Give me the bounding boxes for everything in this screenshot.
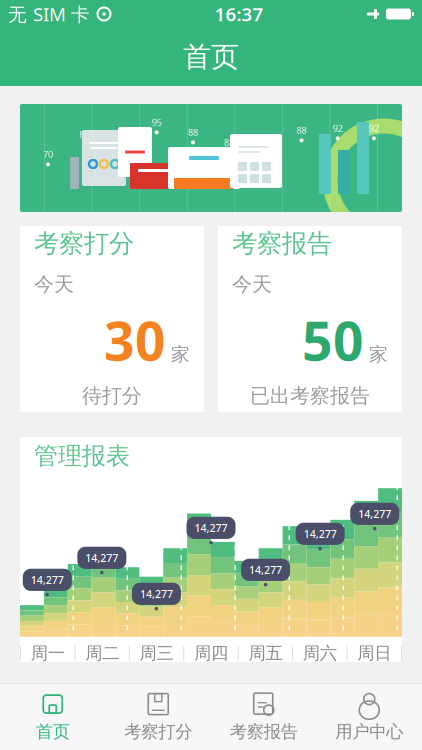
staticText: 95: [152, 116, 162, 128]
staticText: 85: [260, 136, 270, 148]
staticText: 考察打分: [34, 228, 134, 259]
staticText: 待打分: [82, 383, 142, 408]
staticText: 管理报表: [34, 441, 130, 471]
staticText: 14,277: [304, 527, 337, 541]
staticText: 周六: [303, 643, 337, 664]
staticText: 14,277: [140, 587, 173, 601]
staticText: 考察报告: [232, 228, 332, 259]
staticText: 家: [171, 343, 190, 366]
staticText: 88: [188, 126, 198, 138]
button[interactable]: 首页: [0, 684, 105, 750]
staticText: 50: [302, 305, 364, 375]
button[interactable]: 用户中心: [316, 684, 422, 750]
staticText: 周五: [248, 643, 282, 664]
staticText: 家: [369, 343, 388, 366]
staticText: 14,277: [249, 563, 282, 577]
staticText: 无 SIM 卡: [8, 2, 90, 26]
staticText: 周日: [357, 643, 391, 664]
staticText: 14,277: [358, 507, 391, 521]
staticText: 周四: [194, 643, 228, 664]
staticText: 14,277: [85, 551, 118, 565]
staticText: 85: [224, 136, 234, 148]
staticText: 92: [333, 122, 343, 134]
staticText: 用户中心: [335, 721, 403, 742]
staticText: 考察打分: [124, 721, 192, 742]
staticText: 30: [104, 305, 166, 375]
staticText: 今天: [34, 272, 74, 297]
button[interactable]: 考察打分: [20, 226, 204, 412]
staticText: 首页: [36, 721, 70, 742]
staticText: 88: [296, 124, 306, 136]
staticText: 首页: [183, 40, 239, 74]
staticText: 考察报告: [230, 721, 298, 742]
button[interactable]: 考察报告: [218, 226, 402, 412]
staticText: 周三: [140, 643, 174, 664]
staticText: 92: [369, 122, 379, 134]
staticText: 周一: [31, 643, 65, 664]
button[interactable]: 考察报告: [211, 684, 316, 750]
staticText: 今天: [232, 272, 272, 297]
staticText: 已出考察报告: [250, 383, 370, 408]
staticText: 70: [43, 148, 53, 160]
staticText: 14,277: [31, 573, 64, 587]
staticText: 16:37: [214, 2, 263, 26]
staticText: 80: [79, 128, 89, 140]
staticText: 周二: [85, 643, 119, 664]
button[interactable]: 考察打分: [105, 684, 211, 750]
staticText: 14,277: [194, 521, 227, 535]
